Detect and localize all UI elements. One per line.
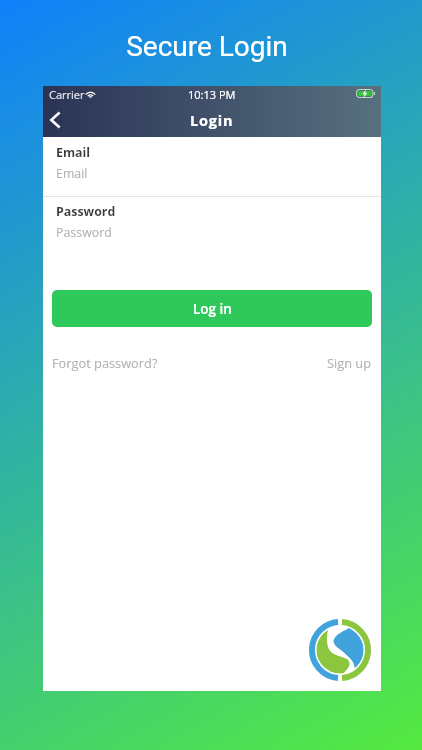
button[interactable]: Password: [43, 203, 381, 253]
staticText: Carrier: [49, 87, 85, 102]
staticText: Secure Login: [0, 30, 418, 63]
staticText: Forgot password?: [52, 354, 158, 371]
staticText: Log in: [193, 300, 232, 318]
staticText: Password: [56, 224, 112, 241]
button[interactable]: Email: [43, 144, 381, 194]
staticText: Login: [190, 111, 234, 131]
staticText: Password: [56, 203, 116, 220]
staticText: Sign up: [327, 354, 372, 371]
button[interactable]: Sign up: [327, 354, 372, 371]
button[interactable]: Forgot password?: [52, 354, 158, 371]
button[interactable]: Log in: [52, 290, 372, 327]
staticText: Email: [56, 165, 88, 182]
staticText: 10:13 PM: [188, 87, 236, 102]
button[interactable]: Back: [43, 105, 91, 137]
staticText: Email: [56, 144, 91, 161]
